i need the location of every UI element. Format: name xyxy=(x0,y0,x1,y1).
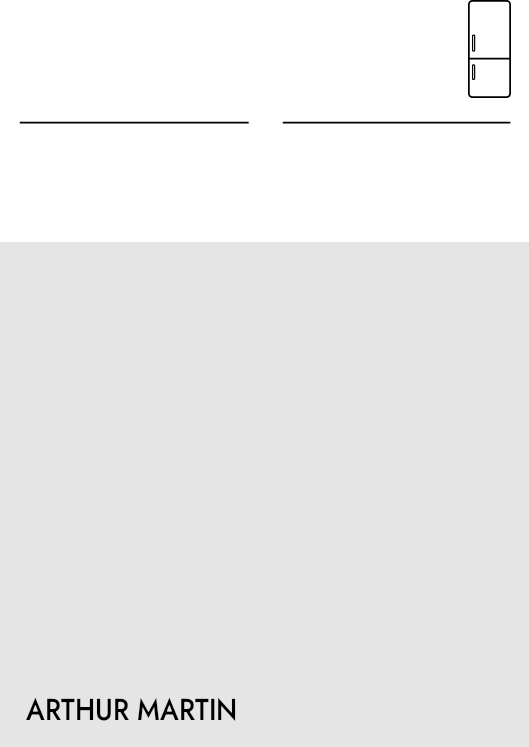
button[interactable]: Fridge freezer appliance xyxy=(468,0,511,98)
button[interactable]: ARTHUR MARTIN xyxy=(20,692,240,728)
